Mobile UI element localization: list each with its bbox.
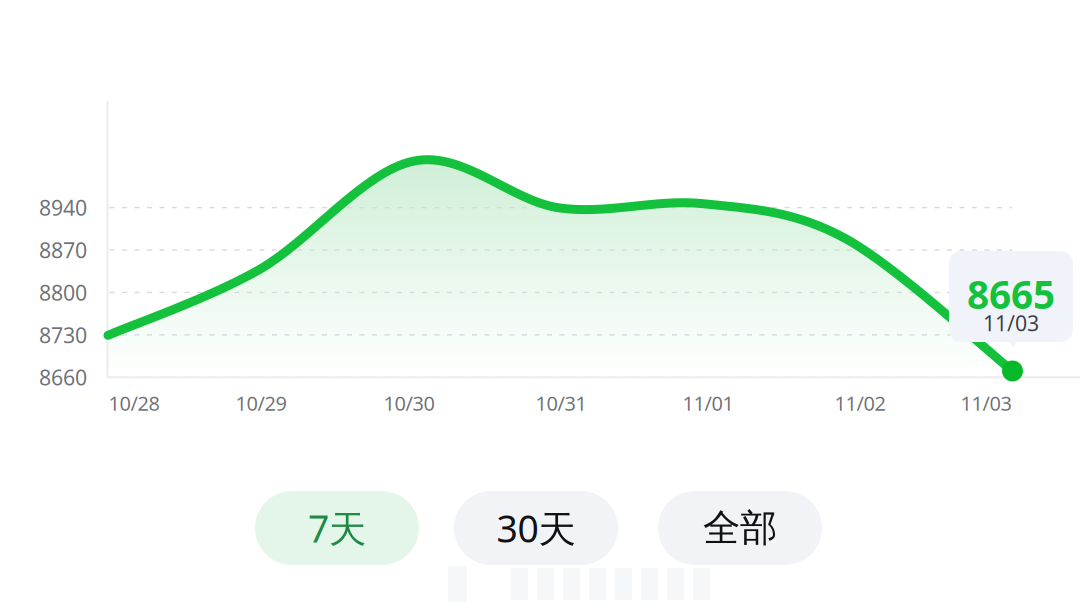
staticText: 10/29 (235, 390, 286, 416)
staticText: 30天 (496, 503, 575, 553)
staticText: 8660 (39, 363, 87, 391)
staticText: 8870 (39, 236, 87, 264)
staticText: 10/28 (108, 390, 159, 416)
staticText: 全部 (703, 505, 777, 551)
staticText: 8800 (39, 278, 87, 307)
staticText: 10/30 (383, 390, 434, 416)
staticText: 8665 (967, 268, 1055, 320)
staticText: 8730 (39, 321, 87, 349)
staticText: 8940 (39, 193, 87, 222)
staticText: 11/03 (983, 309, 1039, 337)
button[interactable]: 全部 (658, 491, 822, 565)
staticText: 10/31 (535, 390, 586, 416)
staticText: 11/02 (834, 390, 885, 416)
staticText: 7天 (308, 503, 366, 553)
staticText: 11/03 (960, 390, 1011, 416)
button[interactable]: 30天 (454, 491, 618, 565)
button[interactable]: 7天 (255, 491, 419, 565)
staticText: 11/01 (682, 390, 733, 416)
